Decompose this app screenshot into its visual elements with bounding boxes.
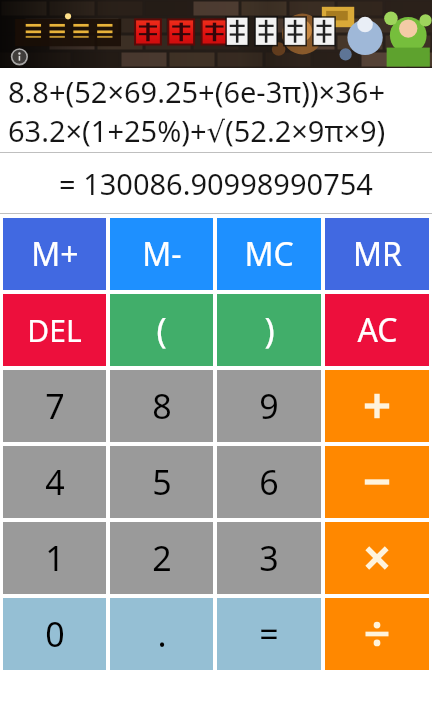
button[interactable]: 0 <box>3 598 106 670</box>
button[interactable]: 7 <box>3 370 106 442</box>
button[interactable]: AC <box>325 294 429 366</box>
staticText: = 130086.90998990754 <box>59 164 373 203</box>
button[interactable]: MC <box>217 218 321 290</box>
button[interactable]: = <box>217 598 321 670</box>
button[interactable]: ) <box>217 294 321 366</box>
button[interactable]: 8 <box>110 370 213 442</box>
staticText: ( <box>156 307 167 353</box>
staticText: DEL <box>27 310 82 351</box>
staticText: 7 <box>45 383 65 429</box>
button[interactable]: . <box>110 598 213 670</box>
button[interactable]: Minus <box>325 446 429 518</box>
button[interactable]: 6 <box>217 446 321 518</box>
button[interactable]: M+ <box>3 218 106 290</box>
staticText: 5 <box>152 459 172 505</box>
staticText: 8 <box>152 383 172 429</box>
staticText: 6 <box>259 459 279 505</box>
staticText: . <box>157 611 167 657</box>
staticText: 4 <box>45 459 65 505</box>
staticText: 0 <box>45 611 65 657</box>
staticText: AC <box>357 308 398 352</box>
staticText: 1 <box>45 535 65 581</box>
button[interactable]: Plus <box>325 370 429 442</box>
button[interactable]: 4 <box>3 446 106 518</box>
staticText: M+ <box>31 232 79 276</box>
button[interactable]: ( <box>110 294 213 366</box>
button[interactable]: 3 <box>217 522 321 594</box>
button[interactable]: MR <box>325 218 429 290</box>
button[interactable]: 9 <box>217 370 321 442</box>
staticText: = <box>259 611 279 657</box>
button[interactable]: M- <box>110 218 213 290</box>
staticText: 9 <box>259 383 279 429</box>
button[interactable]: 2 <box>110 522 213 594</box>
staticText: MR <box>353 232 402 276</box>
button[interactable]: Multiply <box>325 522 429 594</box>
staticText: 3 <box>259 535 279 581</box>
staticText: 63.2×(1+25%)+√(52.2×9π×9) <box>8 111 386 150</box>
staticText: 8.8+(52×69.25+(6e-3π))×36+ <box>8 72 385 111</box>
staticText: 2 <box>152 535 172 581</box>
staticText: M- <box>142 232 182 276</box>
button[interactable]: 5 <box>110 446 213 518</box>
button[interactable]: Advertisement banner <box>0 0 432 68</box>
staticText: ) <box>264 307 275 353</box>
staticText: MC <box>244 232 294 276</box>
button[interactable]: DEL <box>3 294 106 366</box>
button[interactable]: Divide <box>325 598 429 670</box>
button[interactable]: 1 <box>3 522 106 594</box>
